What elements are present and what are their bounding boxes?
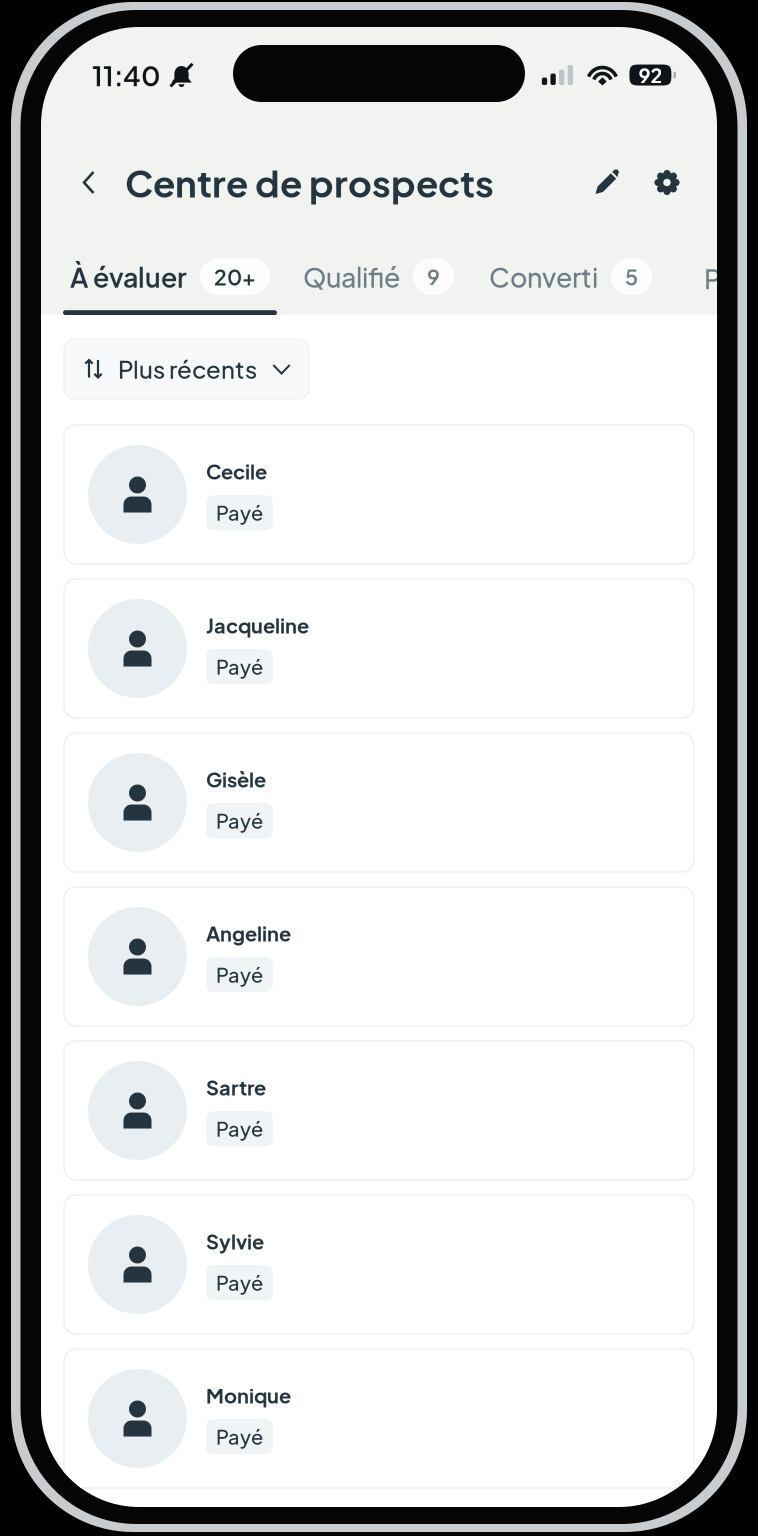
button[interactable]: Settings <box>647 155 687 209</box>
staticText: Payé <box>216 654 263 679</box>
staticText: Payé <box>216 962 263 987</box>
button[interactable]: Sartre <box>64 1041 694 1180</box>
staticText: Payé <box>216 1424 263 1449</box>
staticText: Payé <box>216 1116 263 1141</box>
button[interactable]: Plus récents <box>64 339 309 399</box>
staticText: Qualifié <box>303 260 400 294</box>
staticText: Centre de prospects <box>125 159 494 205</box>
staticText: Sartre <box>206 1075 266 1100</box>
staticText: Pe <box>704 262 737 295</box>
staticText: Payé <box>216 500 263 525</box>
button[interactable]: À évaluer <box>63 227 277 315</box>
button[interactable]: Gisèle <box>64 733 694 872</box>
staticText: 20+ <box>214 263 256 290</box>
staticText: 92 <box>638 62 662 88</box>
staticText: Payé <box>216 1270 263 1295</box>
staticText: Plus récents <box>118 354 257 384</box>
staticText: Cecile <box>206 459 267 484</box>
staticText: Jacqueline <box>206 613 309 638</box>
button[interactable]: Back <box>71 155 107 209</box>
staticText: Angeline <box>206 921 291 946</box>
staticText: 5 <box>625 263 638 290</box>
button[interactable]: Qualifié <box>296 227 461 315</box>
button[interactable]: Converti <box>482 227 659 315</box>
staticText: À évaluer <box>70 260 187 294</box>
button[interactable]: Monique <box>64 1349 694 1488</box>
staticText: Sylvie <box>206 1229 264 1254</box>
button[interactable]: Pe <box>659 227 758 315</box>
button[interactable]: Angeline <box>64 887 694 1026</box>
staticText: Payé <box>216 808 263 833</box>
button[interactable]: Cecile <box>64 425 694 564</box>
button[interactable]: Jacqueline <box>64 579 694 718</box>
staticText: Converti <box>489 260 598 294</box>
staticText: Monique <box>206 1383 291 1408</box>
staticText: Gisèle <box>206 767 266 792</box>
button[interactable]: Edit <box>587 155 627 209</box>
staticText: 9 <box>427 263 440 290</box>
staticText: 11:40 <box>92 58 161 92</box>
button[interactable]: Sylvie <box>64 1195 694 1334</box>
